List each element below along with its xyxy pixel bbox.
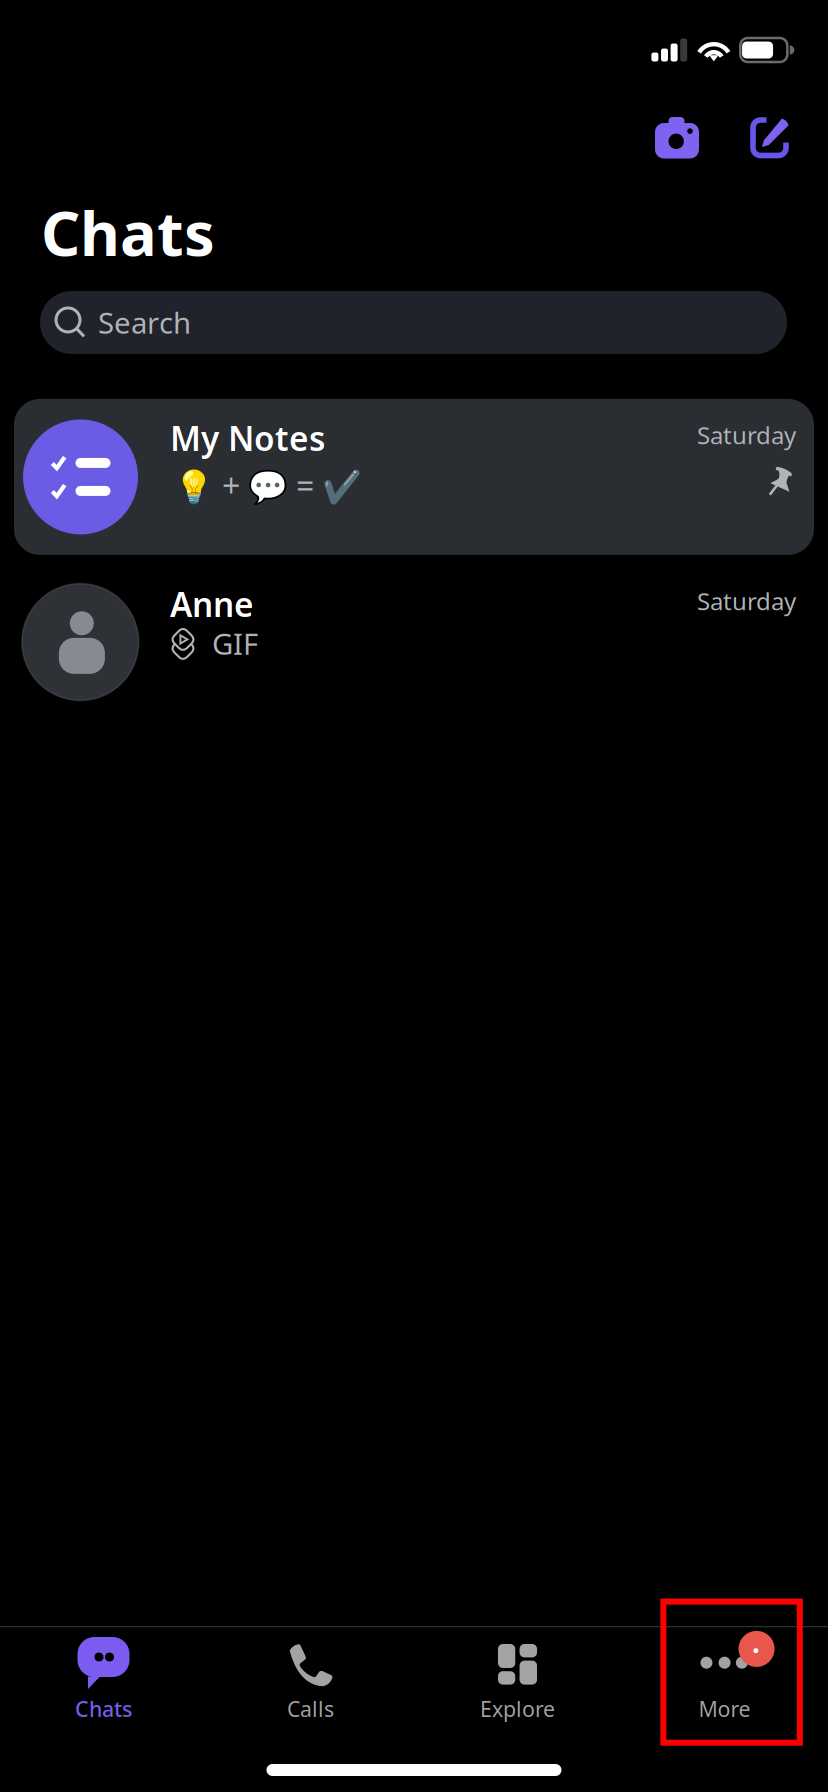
- staticText: 💡 + 💬 = ✔️: [174, 464, 362, 506]
- staticText: Calls: [287, 1694, 334, 1723]
- button[interactable]: Search: [40, 291, 787, 354]
- button[interactable]: Anne: [14, 555, 814, 705]
- button[interactable]: New message: [750, 117, 791, 158]
- staticText: Saturday: [697, 585, 796, 617]
- button[interactable]: Calls: [207, 1627, 414, 1727]
- staticText: Anne: [170, 582, 254, 626]
- staticText: Explore: [480, 1694, 555, 1723]
- staticText: More: [698, 1694, 750, 1723]
- staticText: GIF: [212, 624, 258, 663]
- button[interactable]: More: [621, 1627, 828, 1727]
- button[interactable]: Chats: [0, 1627, 207, 1727]
- button[interactable]: My Notes: [14, 399, 814, 555]
- staticText: Search: [98, 303, 191, 342]
- button[interactable]: Camera: [655, 117, 699, 158]
- staticText: Saturday: [697, 419, 796, 451]
- staticText: Chats: [75, 1694, 132, 1723]
- staticText: Chats: [41, 191, 215, 273]
- staticText: My Notes: [170, 416, 325, 460]
- button[interactable]: Explore: [414, 1627, 621, 1727]
